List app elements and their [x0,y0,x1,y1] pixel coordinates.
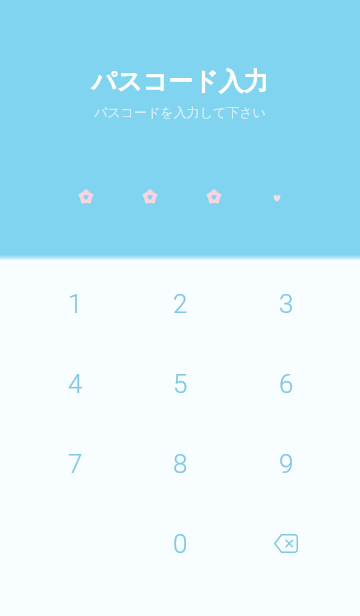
staticText: 2 [173,289,188,319]
staticText: パスコードを入力して下さい [94,104,266,120]
staticText: 9 [279,449,294,479]
button[interactable]: 3 [246,270,326,338]
staticText: 4 [68,369,83,399]
button[interactable]: 6 [246,350,326,418]
staticText: 8 [173,449,188,479]
button[interactable]: 7 [35,430,115,498]
button[interactable]: Backspace [246,510,326,578]
button[interactable]: 4 [35,350,115,418]
staticText: パスコード入力 [91,66,269,97]
staticText: 0 [173,529,188,559]
staticText: 7 [68,449,83,479]
other: Backspace [274,534,298,553]
button[interactable]: 2 [140,270,220,338]
button[interactable]: 8 [140,430,220,498]
button[interactable]: 1 [35,270,115,338]
button[interactable]: 0 [140,510,220,578]
button[interactable]: 9 [246,430,326,498]
staticText: 5 [173,369,188,399]
staticText: 6 [279,369,294,399]
staticText: 1 [68,289,83,319]
staticText: 3 [279,289,294,319]
button[interactable]: 5 [140,350,220,418]
